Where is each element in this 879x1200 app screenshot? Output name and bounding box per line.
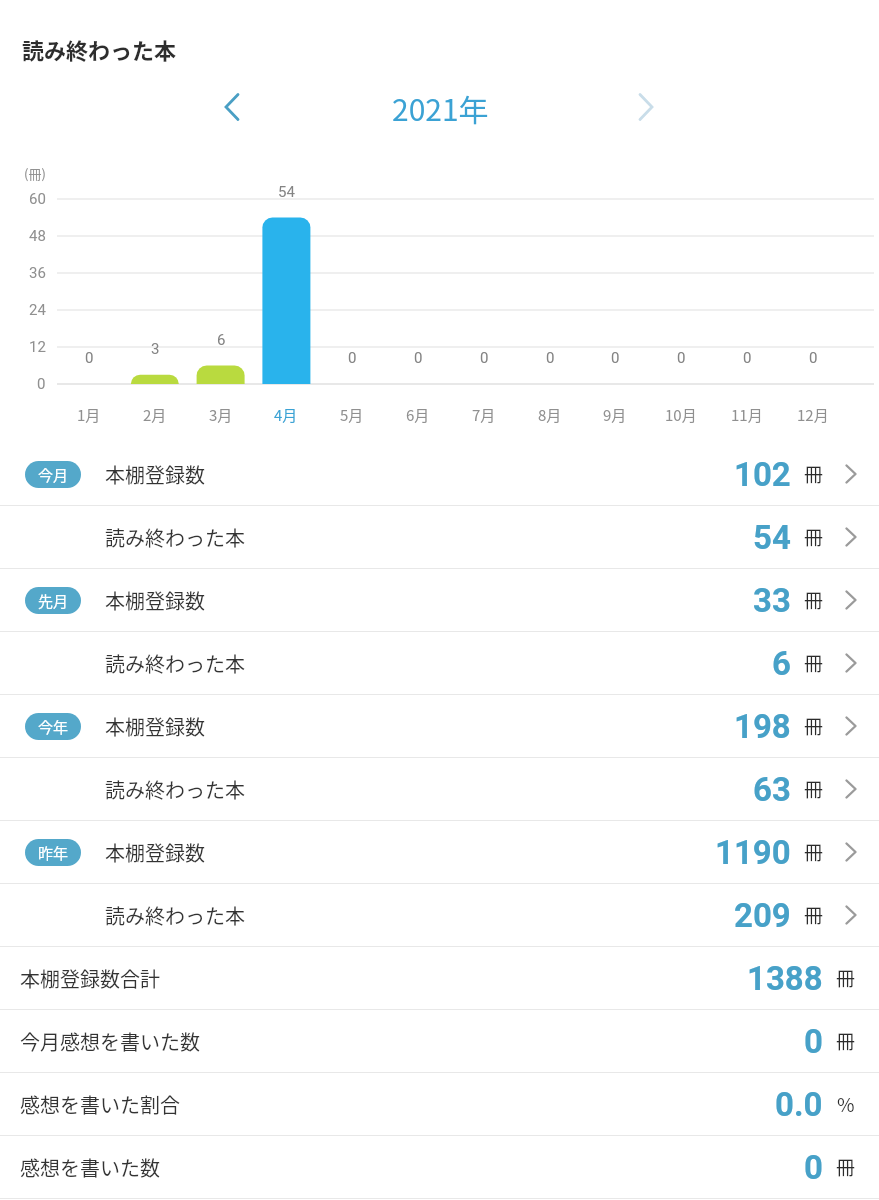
staticText: 1388	[747, 959, 823, 998]
staticText: 0	[743, 349, 752, 367]
staticText: 33	[753, 581, 791, 620]
staticText: 冊	[836, 964, 856, 992]
staticText: 48	[29, 227, 46, 245]
staticText: 先月	[38, 590, 69, 612]
staticText: 冊	[804, 838, 824, 866]
button[interactable]: 2021年	[330, 86, 550, 128]
button[interactable]	[628, 88, 664, 126]
staticText: 読み終わった本	[105, 901, 245, 930]
staticText: 冊	[804, 775, 824, 803]
button[interactable]: 先月	[0, 569, 879, 631]
button[interactable]: 今年	[0, 695, 879, 757]
staticText: 冊	[804, 460, 824, 488]
staticText: 54	[278, 183, 295, 201]
staticText: %	[837, 1090, 855, 1118]
staticText: 0	[804, 1148, 823, 1187]
staticText: 冊	[836, 1153, 856, 1181]
staticText: 12	[29, 338, 46, 356]
staticText: 昨年	[38, 842, 69, 864]
staticText: 11月	[731, 404, 763, 426]
staticText: 本棚登録数	[105, 838, 205, 867]
staticText: 冊	[804, 901, 824, 929]
staticText: 0	[611, 349, 620, 367]
staticText: 0	[677, 349, 686, 367]
staticText: 読み終わった本	[105, 775, 245, 804]
staticText: 60	[29, 190, 46, 208]
staticText: 4月	[274, 404, 298, 426]
staticText: 24	[29, 301, 46, 319]
staticText: 6	[772, 644, 791, 683]
staticText: 本棚登録数	[105, 712, 205, 741]
staticText: 本棚登録数	[105, 460, 205, 489]
staticText: 7月	[472, 404, 496, 426]
staticText: 209	[734, 896, 791, 935]
staticText: 63	[753, 770, 791, 809]
button[interactable]: 読み終わった本	[0, 632, 879, 694]
staticText: 冊	[804, 649, 824, 677]
button[interactable]: 今月感想を書いた数	[0, 1010, 879, 1072]
staticText: 感想を書いた数	[20, 1153, 160, 1182]
staticText: 1190	[715, 833, 791, 872]
staticText: 冊	[804, 712, 824, 740]
button[interactable]: 読み終わった本	[0, 506, 879, 568]
button[interactable]: 感想を書いた数	[0, 1136, 879, 1198]
staticText: 36	[29, 264, 46, 282]
staticText: 0	[37, 375, 46, 393]
staticText: 3月	[209, 404, 233, 426]
staticText: 6月	[406, 404, 430, 426]
staticText: (冊)	[24, 164, 46, 183]
staticText: 5月	[340, 404, 364, 426]
staticText: 0	[348, 349, 357, 367]
staticText: 2021年	[392, 86, 489, 128]
staticText: 3	[151, 340, 160, 358]
staticText: 0	[85, 349, 94, 367]
staticText: 102	[734, 455, 791, 494]
staticText: 読み終わった本	[22, 33, 177, 65]
staticText: 今月感想を書いた数	[20, 1027, 200, 1056]
button[interactable]: 感想を書いた割合	[0, 1073, 879, 1135]
staticText: 本棚登録数	[105, 586, 205, 615]
button[interactable]	[214, 88, 250, 126]
staticText: 54	[753, 518, 791, 557]
staticText: 9月	[603, 404, 627, 426]
button[interactable]: 読み終わった本	[0, 884, 879, 946]
staticText: 0	[809, 349, 818, 367]
staticText: 感想を書いた割合	[20, 1090, 180, 1119]
staticText: 読み終わった本	[105, 523, 245, 552]
staticText: 0	[414, 349, 423, 367]
staticText: 冊	[804, 523, 824, 551]
staticText: 冊	[804, 586, 824, 614]
staticText: 6	[217, 331, 226, 349]
staticText: 0	[804, 1022, 823, 1061]
staticText: 1月	[77, 404, 101, 426]
button[interactable]: 本棚登録数合計	[0, 947, 879, 1009]
button[interactable]: 今月	[0, 443, 879, 505]
staticText: 10月	[665, 404, 697, 426]
staticText: 0.0	[775, 1085, 823, 1124]
staticText: 読み終わった本	[105, 649, 245, 678]
staticText: 12月	[797, 404, 829, 426]
button[interactable]: 昨年	[0, 821, 879, 883]
staticText: 0	[480, 349, 489, 367]
staticText: 198	[734, 707, 791, 746]
staticText: 8月	[538, 404, 562, 426]
button[interactable]: 読み終わった本	[0, 758, 879, 820]
staticText: 本棚登録数合計	[20, 964, 160, 993]
staticText: 今年	[38, 716, 69, 738]
staticText: 2月	[143, 404, 167, 426]
staticText: 0	[546, 349, 555, 367]
staticText: 冊	[836, 1027, 856, 1055]
staticText: 今月	[38, 464, 69, 486]
